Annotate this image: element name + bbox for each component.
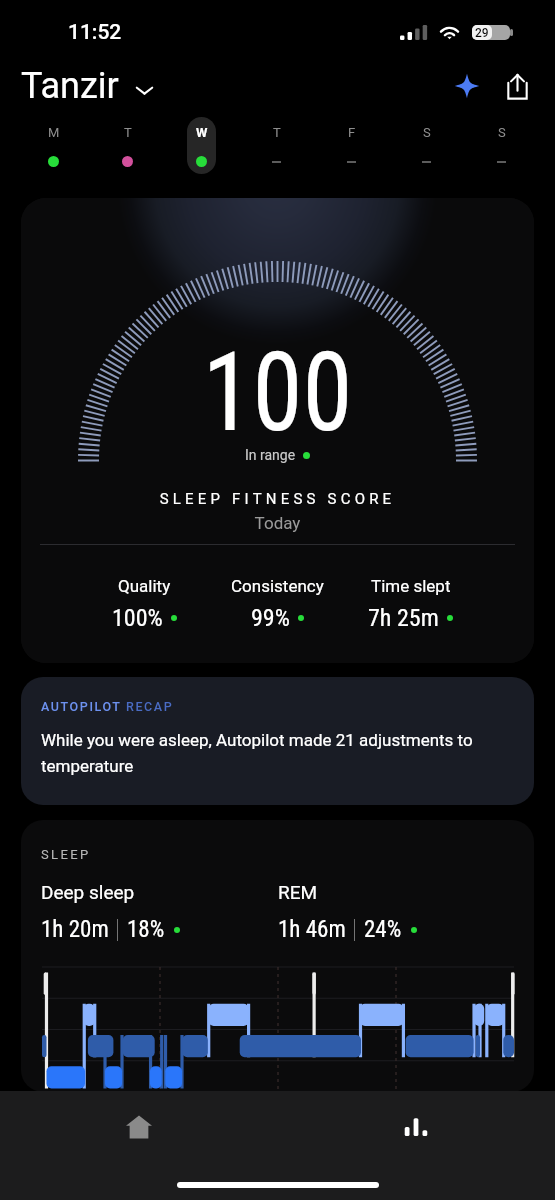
staticText: S: [498, 125, 506, 140]
staticText: While you were asleep, Autopilot made 21…: [41, 730, 514, 777]
staticText: In range: [245, 447, 296, 463]
button[interactable]: AI assistant: [447, 66, 487, 106]
staticText: SLEEP FITNESS SCORE: [21, 490, 534, 508]
button[interactable]: M: [39, 117, 68, 174]
staticText: T: [273, 125, 281, 140]
button[interactable]: Home: [0, 1091, 277, 1162]
staticText: SLEEP: [41, 847, 91, 862]
staticText: Deep sleep: [41, 881, 135, 903]
staticText: 1h 46m: [278, 916, 346, 943]
button[interactable]: T: [113, 117, 142, 174]
button[interactable]: W: [187, 117, 216, 174]
staticText: REM: [278, 881, 318, 903]
button[interactable]: 100: [21, 198, 534, 663]
staticText: 11:52: [68, 20, 122, 45]
staticText: S: [423, 125, 431, 140]
staticText: 100: [41, 328, 513, 457]
staticText: 29: [475, 26, 489, 40]
staticText: Quality: [118, 576, 171, 596]
button[interactable]: Share: [497, 66, 537, 106]
staticText: T: [124, 125, 132, 140]
staticText: M: [48, 125, 60, 140]
staticText: AUTOPILOT: [41, 699, 126, 714]
button[interactable]: Trends: [277, 1091, 555, 1162]
staticText: 99%: [251, 604, 290, 632]
staticText: 7h 25m: [368, 604, 439, 632]
button[interactable]: S: [487, 117, 516, 174]
button[interactable]: S: [412, 117, 441, 174]
staticText: 24%: [364, 916, 402, 943]
button[interactable]: SLEEP: [21, 820, 534, 1092]
staticText: Tanzir: [21, 65, 119, 107]
button[interactable]: AUTOPILOT: [21, 677, 534, 805]
staticText: F: [348, 125, 356, 140]
staticText: 18%: [127, 916, 165, 943]
button[interactable]: T: [262, 117, 291, 174]
button[interactable]: Tanzir: [21, 65, 153, 107]
staticText: Today: [21, 513, 534, 533]
staticText: 100%: [112, 604, 163, 632]
staticText: RECAP: [126, 699, 174, 714]
staticText: 1h 20m: [41, 916, 109, 943]
staticText: Time slept: [371, 576, 451, 596]
staticText: W: [196, 125, 208, 140]
button[interactable]: F: [337, 117, 366, 174]
staticText: Consistency: [231, 576, 324, 596]
